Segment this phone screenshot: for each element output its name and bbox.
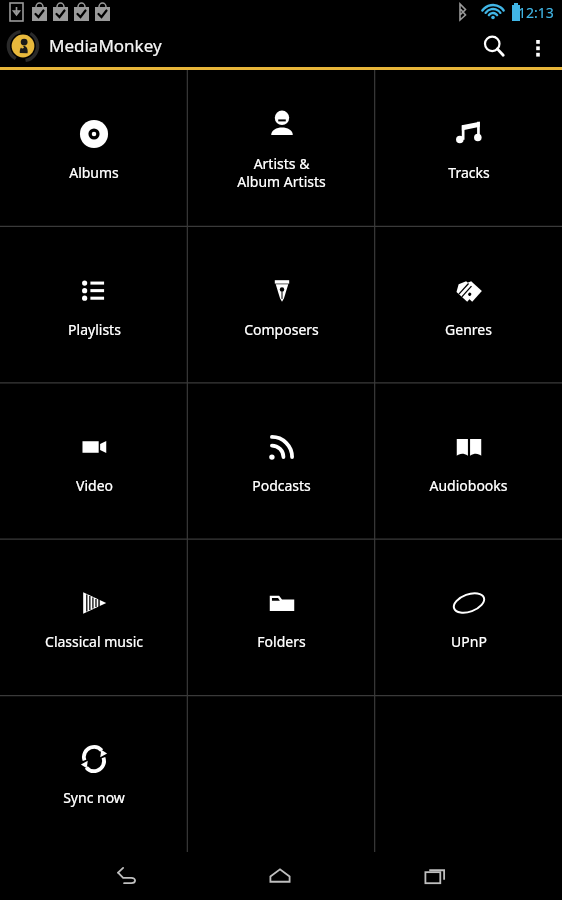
button[interactable]: Artists & Album Artists: [188, 70, 375, 227]
button[interactable]: Podcasts: [188, 384, 375, 540]
button[interactable]: Search: [470, 24, 518, 67]
button[interactable]: Back: [98, 852, 154, 900]
staticText: Classical music: [45, 632, 143, 651]
staticText: Folders: [257, 632, 306, 651]
staticText: Genres: [445, 320, 492, 339]
button[interactable]: Sync now: [0, 696, 188, 852]
staticText: Podcasts: [252, 476, 311, 495]
button[interactable]: Albums: [0, 70, 188, 227]
staticText: Composers: [244, 320, 319, 339]
staticText: Video: [76, 476, 113, 495]
button[interactable]: Genres: [375, 227, 562, 384]
button[interactable]: Recents: [407, 852, 463, 900]
staticText: Sync now: [63, 788, 125, 807]
staticText: Audiobooks: [429, 476, 508, 495]
staticText: Artists & Album Artists: [237, 154, 326, 191]
staticText: Playlists: [68, 320, 121, 339]
button[interactable]: Video: [0, 384, 188, 540]
button[interactable]: Folders: [188, 540, 375, 696]
button[interactable]: Classical music: [0, 540, 188, 696]
button[interactable]: Tracks: [375, 70, 562, 227]
staticText: 12:13: [518, 3, 554, 22]
button[interactable]: More options: [518, 26, 558, 66]
button[interactable]: UPnP: [375, 540, 562, 696]
button[interactable]: Home: [252, 852, 308, 900]
staticText: MediaMonkey: [49, 34, 162, 57]
button[interactable]: Playlists: [0, 227, 188, 384]
staticText: UPnP: [451, 632, 487, 651]
button[interactable]: Composers: [188, 227, 375, 384]
staticText: Albums: [69, 163, 119, 182]
button[interactable]: Audiobooks: [375, 384, 562, 540]
staticText: Tracks: [448, 163, 490, 182]
